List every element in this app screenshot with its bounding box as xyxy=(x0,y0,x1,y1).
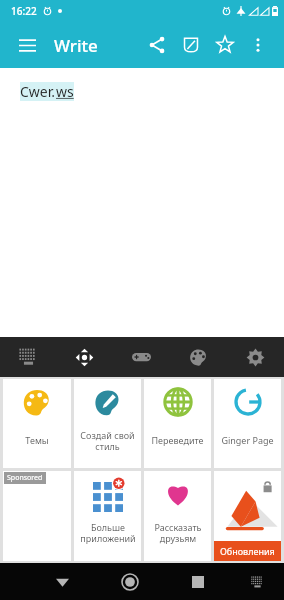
button[interactable]: Sponsored advertisement xyxy=(3,471,71,561)
button[interactable]: Move xyxy=(56,337,113,377)
button[interactable]: Switch keyboard xyxy=(242,567,272,597)
button[interactable]: Home xyxy=(113,565,147,599)
button[interactable]: More options xyxy=(242,29,274,61)
staticText: Cwer. xyxy=(20,82,56,101)
button[interactable]: Games xyxy=(113,337,170,377)
staticText: Обновления xyxy=(220,545,275,557)
button[interactable]: Больше приложений xyxy=(74,471,141,561)
button[interactable]: Themes xyxy=(170,337,227,377)
button[interactable]: Создай свой стиль xyxy=(74,379,141,468)
button[interactable]: Share xyxy=(141,29,173,61)
button[interactable]: Обновления xyxy=(214,471,281,561)
button[interactable]: Рассказать друзьям xyxy=(144,471,211,561)
button[interactable]: Eraser xyxy=(175,29,207,61)
button[interactable]: Ginger Page xyxy=(214,379,281,468)
button[interactable]: Back xyxy=(45,565,79,599)
staticText: Переведите xyxy=(151,434,204,446)
staticText: ws xyxy=(56,82,74,101)
button[interactable]: Favorite xyxy=(209,29,241,61)
staticText: Ginger Page xyxy=(221,434,274,446)
staticText: Write xyxy=(54,34,98,57)
staticText: Sponsored xyxy=(7,473,43,483)
staticText: Рассказать друзьям xyxy=(154,521,202,544)
button[interactable]: Menu xyxy=(10,28,44,62)
button[interactable]: Keyboard xyxy=(0,337,56,377)
button[interactable]: Recent apps xyxy=(181,565,215,599)
staticText: 16:22 xyxy=(11,4,37,18)
button[interactable]: Settings xyxy=(227,337,284,377)
staticText: Создай свой стиль xyxy=(80,429,135,452)
staticText: Темы xyxy=(25,434,49,446)
staticText: Больше приложений xyxy=(80,521,136,544)
button[interactable]: Переведите xyxy=(144,379,211,468)
button[interactable]: Темы xyxy=(3,379,71,468)
